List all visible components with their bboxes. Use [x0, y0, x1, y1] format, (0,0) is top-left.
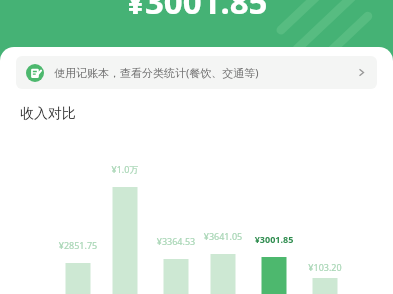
- button[interactable]: 使用记账本，查看分类统计(餐饮、交通等): [16, 56, 377, 89]
- staticText: ¥3641.05: [192, 230, 254, 242]
- staticText: ¥2851.75: [47, 239, 109, 251]
- staticText: ¥3364.53: [145, 235, 207, 247]
- staticText: 使用记账本，查看分类统计(餐饮、交通等): [54, 65, 356, 80]
- staticText: 收入对比: [20, 105, 76, 123]
- staticText: ¥3001.85: [126, 0, 268, 24]
- staticText: ¥3001.85: [243, 233, 305, 245]
- staticText: ¥1.0万: [94, 163, 156, 175]
- other: Open ledger category statistics: [356, 67, 367, 78]
- staticText: ¥103.20: [294, 261, 356, 273]
